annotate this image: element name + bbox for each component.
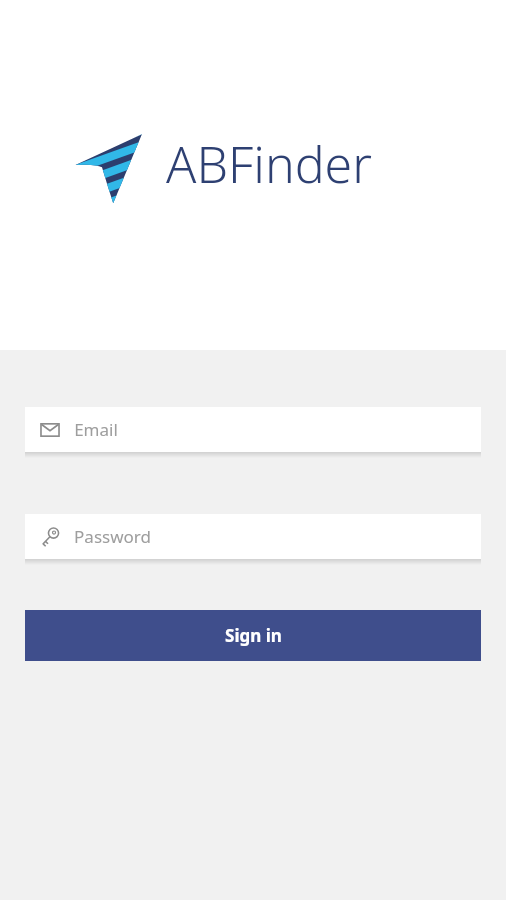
button[interactable]: Email <box>25 407 481 452</box>
staticText: Sign in <box>225 624 282 647</box>
staticText: Password <box>74 525 151 548</box>
button[interactable]: Password <box>25 514 481 559</box>
staticText: ABFinder <box>166 130 372 198</box>
button[interactable]: Sign in <box>25 610 481 661</box>
staticText: Email <box>74 418 118 441</box>
